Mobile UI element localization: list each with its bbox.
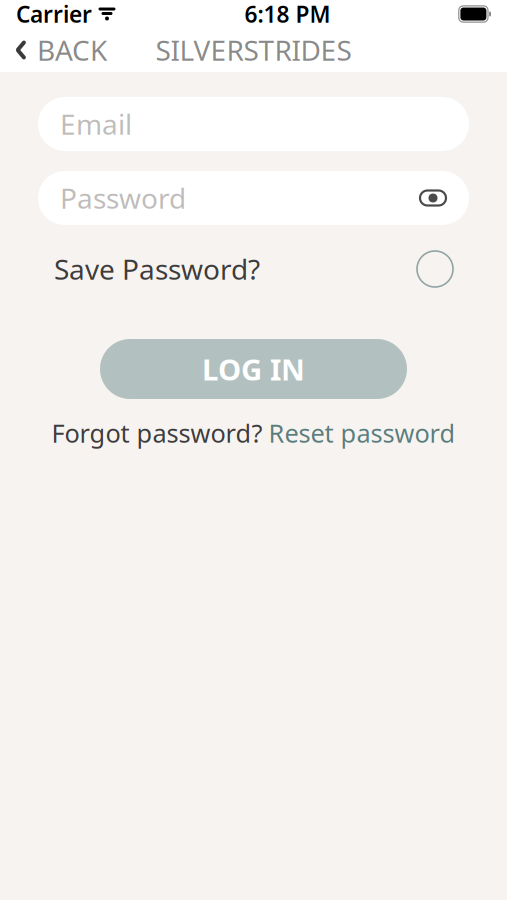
staticText: BACK xyxy=(37,31,107,69)
staticText: Password xyxy=(60,179,186,217)
button[interactable]: Save Password? xyxy=(38,243,469,295)
staticText: Forgot password? xyxy=(51,416,262,450)
button[interactable]: Show password xyxy=(413,183,453,213)
button[interactable]: Reset password xyxy=(268,416,455,450)
staticText: Email xyxy=(60,105,132,143)
button[interactable]: BACK xyxy=(0,23,121,77)
staticText: LOG IN xyxy=(202,349,305,388)
staticText: Reset password xyxy=(268,416,455,450)
staticText: 6:18 PM xyxy=(244,0,330,29)
staticText: Carrier xyxy=(16,0,92,29)
button[interactable]: LOG IN xyxy=(100,339,407,399)
staticText: SILVERSTRIDES xyxy=(155,31,351,69)
staticText: Save Password? xyxy=(54,250,260,288)
